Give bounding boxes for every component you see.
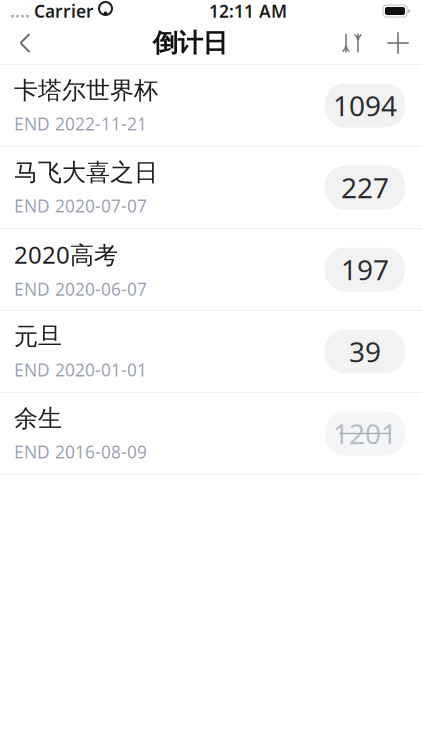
staticText: 2020高考 [14,239,118,270]
staticText: 倒计日 [152,27,227,58]
staticText: 12:11 AM [209,0,287,22]
staticText: 197 [341,251,389,288]
staticText: 227 [341,169,389,206]
button[interactable]: Back [0,22,50,64]
button[interactable]: 卡塔尔世界杯 [0,65,422,146]
button[interactable]: 2020高考 [0,229,422,310]
staticText: Carrier [34,0,94,22]
staticText: 元旦 [14,322,62,351]
staticText: .... [10,0,30,22]
staticText: END 2020-07-07 [14,194,147,217]
staticText: 马飞大喜之日 [14,158,158,187]
button[interactable]: 余生 [0,393,422,474]
button[interactable]: Sort [330,22,374,64]
staticText: END 2020-01-01 [14,358,147,381]
button[interactable]: 元旦 [0,311,422,392]
button[interactable]: Add [374,22,422,64]
staticText: 卡塔尔世界杯 [14,76,158,105]
staticText: END 2022-11-21 [14,112,147,135]
staticText: 1094 [333,87,397,124]
staticText: END 2016-08-09 [14,440,147,463]
staticText: 1201 [333,415,397,452]
staticText: END 2020-06-07 [14,277,147,300]
button[interactable]: 马飞大喜之日 [0,147,422,228]
staticText: 余生 [14,404,62,433]
staticText: 39 [349,333,381,370]
